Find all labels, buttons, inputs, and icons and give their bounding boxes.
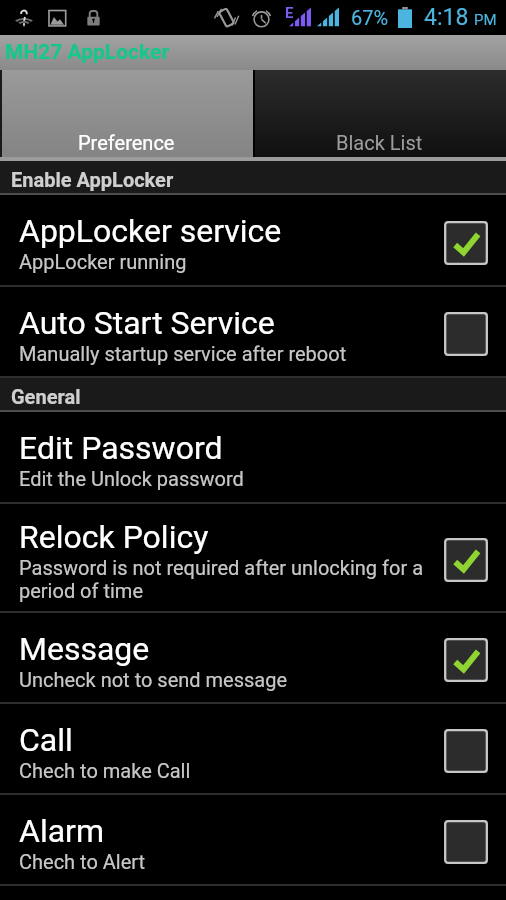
staticText: Uncheck not to send message [19, 668, 288, 691]
button[interactable]: Auto Start Service [0, 287, 506, 376]
button[interactable]: Preference [0, 70, 253, 157]
staticText: Message [19, 630, 150, 668]
staticText: General [11, 385, 81, 408]
staticText: Chech to Alert [19, 850, 146, 873]
staticText: Password is not required after unlocking… [19, 556, 431, 602]
button[interactable]: Relock Policy [0, 504, 506, 611]
staticText: 4:18 [424, 4, 469, 31]
staticText: Relock Policy [19, 518, 209, 556]
staticText: Enable AppLocker [11, 168, 174, 191]
staticText: Auto Start Service [19, 304, 275, 342]
staticText: AppLocker running [19, 250, 187, 273]
button[interactable]: Alarm [0, 795, 506, 884]
staticText: Manually startup service after reboot [19, 342, 347, 365]
button[interactable]: Call [0, 704, 506, 793]
staticText: AppLocker service [19, 212, 282, 250]
button[interactable]: AppLocker service [0, 195, 506, 285]
staticText: PM [474, 11, 497, 29]
staticText: Edit the Unlock password [19, 467, 244, 490]
staticText: 67% [351, 6, 389, 29]
staticText: Black List [336, 131, 423, 154]
button[interactable]: Edit Password [0, 412, 506, 502]
button[interactable]: Black List [253, 70, 506, 157]
button[interactable]: Message [0, 613, 506, 702]
staticText: E [285, 4, 294, 22]
staticText: Chech to make Call [19, 759, 191, 782]
staticText: Preference [78, 131, 175, 154]
staticText: Call [19, 721, 73, 759]
staticText: MH27 AppLocker [5, 40, 170, 65]
staticText: Edit Password [19, 429, 223, 467]
staticText: Alarm [19, 812, 104, 850]
